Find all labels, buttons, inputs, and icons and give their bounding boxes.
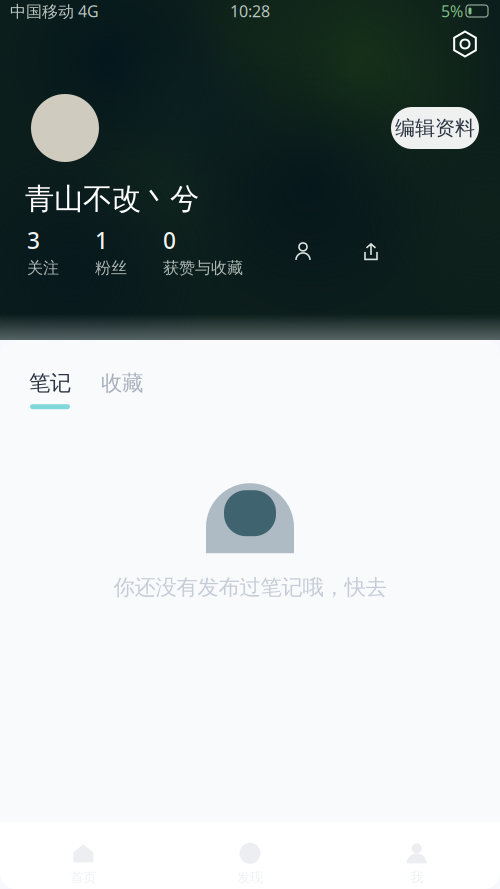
staticText: 1 [95, 225, 108, 255]
staticText: 发现 [237, 869, 263, 886]
button[interactable]: Settings [448, 27, 482, 61]
button[interactable]: 0 [163, 225, 243, 278]
staticText: 10:28 [230, 0, 270, 22]
button[interactable]: 我 [333, 814, 500, 889]
button[interactable]: Share [353, 233, 389, 269]
staticText: 你还没有发布过笔记哦，快去 [113, 574, 386, 600]
staticText: 5% [441, 0, 463, 22]
button[interactable]: Find friends [285, 233, 321, 269]
staticText: 中国移动 4G [10, 0, 99, 22]
staticText: 0 [163, 225, 176, 255]
button[interactable]: 发现 [167, 814, 333, 889]
staticText: 粉丝 [95, 258, 127, 278]
staticText: 编辑资料 [395, 116, 475, 140]
staticText: 3 [27, 225, 40, 255]
staticText: 我 [410, 869, 423, 886]
button[interactable]: 3 [27, 225, 59, 278]
staticText: 获赞与收藏 [163, 258, 243, 278]
button[interactable]: 收藏 [86, 370, 158, 409]
button[interactable]: 笔记 [14, 370, 86, 409]
staticText: 青山不改丶兮 [25, 181, 199, 217]
staticText: 首页 [70, 869, 96, 886]
staticText: 关注 [27, 258, 59, 278]
button[interactable]: 1 [95, 225, 127, 278]
button[interactable]: 首页 [0, 814, 167, 889]
staticText: 笔记 [29, 370, 71, 396]
staticText: 收藏 [101, 370, 143, 396]
button[interactable]: 编辑资料 [391, 107, 479, 149]
